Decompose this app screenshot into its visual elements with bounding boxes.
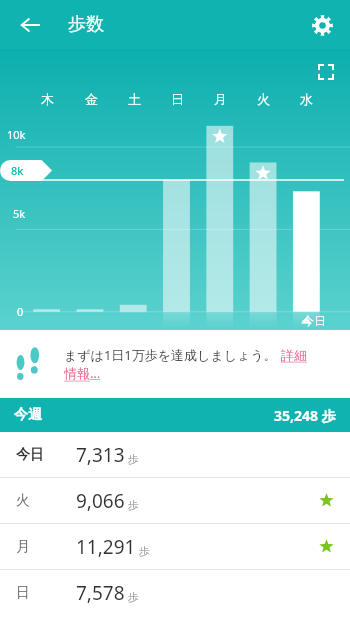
- staticText: 0: [17, 304, 24, 319]
- button[interactable]: 今週: [0, 398, 350, 432]
- staticText: 木: [41, 91, 54, 107]
- staticText: 歩: [139, 544, 150, 558]
- button[interactable]: 月: [0, 524, 350, 569]
- staticText: 日: [171, 91, 184, 107]
- staticText: 8k: [11, 163, 24, 178]
- staticText: 歩: [128, 452, 139, 466]
- button[interactable]: Back: [10, 5, 50, 45]
- staticText: 9,066: [76, 488, 125, 514]
- staticText: 火: [16, 492, 30, 510]
- button[interactable]: 日: [0, 570, 350, 615]
- staticText: 月: [214, 91, 227, 107]
- staticText: 日: [16, 584, 30, 602]
- button[interactable]: Settings: [302, 5, 342, 45]
- staticText: 歩: [128, 498, 139, 512]
- staticText: まずは1日1万歩を達成しましょう。: [64, 346, 277, 364]
- button[interactable]: 情報…: [64, 364, 101, 382]
- staticText: 10k: [7, 127, 26, 142]
- staticText: 月: [16, 538, 30, 556]
- staticText: 歩数: [68, 13, 104, 36]
- staticText: 金: [85, 91, 98, 107]
- staticText: 歩: [128, 590, 139, 604]
- button[interactable]: 火: [0, 478, 350, 523]
- staticText: 水: [300, 91, 313, 107]
- staticText: 火: [257, 91, 270, 107]
- staticText: 今週: [14, 406, 42, 424]
- staticText: 7,313: [76, 442, 125, 468]
- button[interactable]: まずは1日1万歩を達成しましょう。: [0, 330, 350, 398]
- staticText: 今日: [16, 446, 44, 464]
- staticText: 5k: [13, 206, 26, 221]
- button[interactable]: Fullscreen: [311, 57, 341, 87]
- staticText: 35,248 歩: [274, 406, 336, 425]
- staticText: 土: [128, 91, 141, 107]
- staticText: 11,291: [76, 534, 136, 560]
- staticText: 今日: [302, 313, 326, 328]
- button[interactable]: 詳細: [281, 347, 307, 363]
- button[interactable]: 今日: [0, 432, 350, 477]
- staticText: 7,578: [76, 580, 125, 606]
